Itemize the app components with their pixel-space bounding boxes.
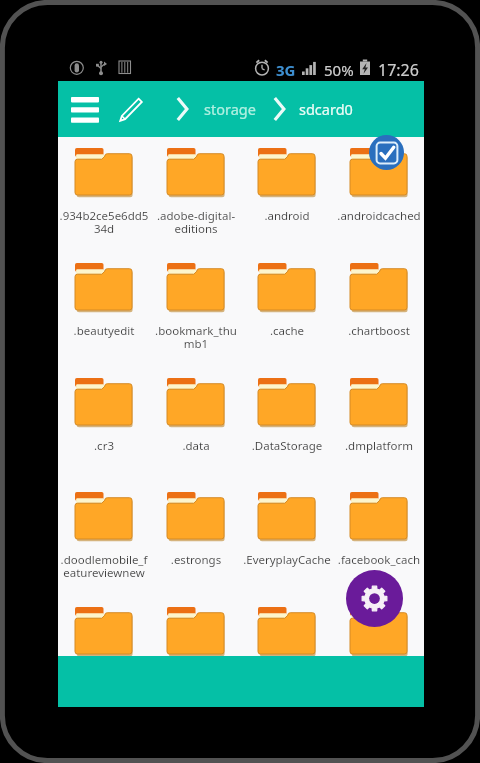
button[interactable]: Path separator [265,93,293,125]
button[interactable]: .EveryplayCache [241,481,333,593]
button[interactable]: .cr3 [58,367,150,479]
button[interactable]: .934b2ce5e6dd534d [58,137,150,249]
staticText: sdcard0 [299,99,353,119]
staticText: 50% [324,60,354,80]
button[interactable]: storage [204,90,256,128]
button[interactable]: .android [241,137,333,249]
staticText: .data [151,438,241,454]
staticText: .estrongs [151,552,241,568]
staticText: .934b2ce5e6dd534d [59,208,149,237]
staticText: .androidcached [334,208,424,224]
staticText: .cr3 [59,438,149,454]
button[interactable]: Settings [346,570,403,627]
staticText: .doodlemobile_featureviewnew [59,552,149,581]
button[interactable]: .dmplatform [333,367,425,479]
staticText: 3G [276,60,296,80]
staticText: .bookmark_thumb1 [151,323,241,352]
staticText: .adobe-digital-editions [151,208,241,237]
staticText: .DataStorage [242,438,332,454]
button[interactable]: .adobe-digital-editions [150,137,242,249]
staticText: .EveryplayCache [242,552,332,568]
button[interactable]: Select all [369,135,404,170]
button[interactable]: .data [150,367,242,479]
button[interactable]: .androidcached [333,137,425,249]
staticText: .chartboost [334,323,424,339]
button[interactable]: sdcard0 [299,90,353,128]
button[interactable]: .facebook_cach [333,481,425,593]
button[interactable]: Path separator [168,93,196,125]
staticText: 17:26 [378,59,419,81]
button[interactable]: .bookmark_thumb1 [150,252,242,364]
staticText: .cache [242,323,332,339]
button[interactable] [58,596,150,708]
button[interactable]: .DataStorage [241,367,333,479]
button[interactable]: Edit path [112,91,148,127]
button[interactable] [241,596,333,708]
button[interactable]: .beautyedit [58,252,150,364]
staticText: .android [242,208,332,224]
button[interactable]: Menu [67,93,103,125]
button[interactable]: .cache [241,252,333,364]
button[interactable] [333,596,425,708]
button[interactable] [150,596,242,708]
staticText: .facebook_cach [334,552,424,568]
staticText: .dmplatform [334,438,424,454]
button[interactable]: .chartboost [333,252,425,364]
staticText: .beautyedit [59,323,149,339]
staticText: storage [204,99,256,119]
button[interactable]: .doodlemobile_featureviewnew [58,481,150,593]
button[interactable]: .estrongs [150,481,242,593]
